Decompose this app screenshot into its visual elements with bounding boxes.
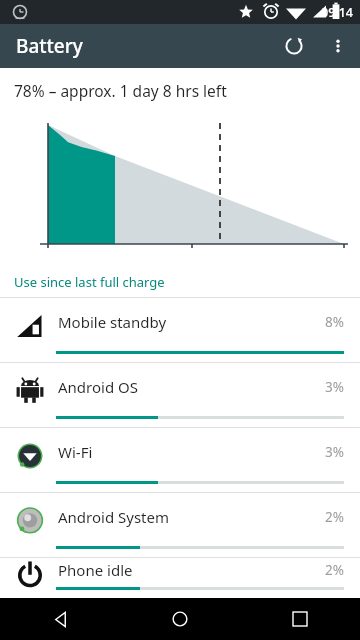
staticText: Use since last full charge <box>14 273 165 291</box>
button[interactable]: Recent apps <box>240 598 360 640</box>
staticText: 8% <box>325 313 344 331</box>
button[interactable]: Android System <box>0 492 360 557</box>
staticText: 2% <box>325 508 344 526</box>
staticText: 78% – approx. 1 day 8 hrs left <box>14 80 227 101</box>
staticText: 3% <box>325 378 344 396</box>
button[interactable]: Phone idle <box>0 557 360 598</box>
button[interactable]: More options <box>316 24 360 68</box>
button[interactable]: Wi-Fi <box>0 427 360 492</box>
staticText: 09:14 <box>321 4 354 21</box>
staticText: Mobile standby <box>58 312 167 332</box>
staticText: 2% <box>325 561 344 579</box>
button[interactable]: Mobile standby <box>0 297 360 362</box>
staticText: Android System <box>58 507 170 527</box>
staticText: 3% <box>325 443 344 461</box>
staticText: Phone idle <box>58 560 133 580</box>
staticText: Wi-Fi <box>58 442 93 462</box>
button[interactable]: Refresh <box>272 24 316 68</box>
button[interactable]: Android OS <box>0 362 360 427</box>
staticText: Battery <box>16 33 83 59</box>
button[interactable]: Back <box>0 598 120 640</box>
button[interactable]: Home <box>120 598 240 640</box>
staticText: Android OS <box>58 377 138 397</box>
